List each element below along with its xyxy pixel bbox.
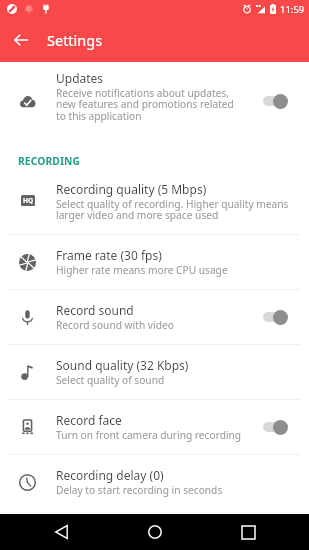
staticText: Settings [47, 30, 103, 50]
button[interactable]: Toggle Record face [262, 400, 309, 454]
staticText: Receive notifications about updates, new… [56, 86, 234, 123]
button[interactable]: Recents [231, 515, 265, 549]
staticText: Updates [56, 70, 104, 86]
staticText: Select quality of sound [56, 373, 165, 387]
button[interactable]: Home [138, 515, 172, 549]
button[interactable]: HQ [0, 172, 309, 234]
staticText: HQ [23, 196, 34, 205]
staticText: RECORDING [18, 154, 81, 168]
staticText: Select quality of recording. Higher qual… [56, 197, 289, 222]
button[interactable]: Updates [0, 62, 309, 130]
button[interactable]: Sound quality (32 Kbps) [0, 345, 309, 399]
button[interactable]: Record sound [0, 290, 309, 344]
staticText: Turn on front camera during recording [56, 428, 242, 442]
button[interactable]: Record face [0, 400, 309, 454]
staticText: Frame rate (30 fps) [56, 247, 162, 263]
button[interactable]: Back [6, 25, 36, 55]
staticText: Recording quality (5 Mbps) [56, 181, 207, 197]
button[interactable]: Toggle Record sound [262, 290, 309, 344]
button[interactable]: Frame rate (30 fps) [0, 235, 309, 289]
staticText: Recording delay (0) [56, 467, 164, 483]
staticText: 11:59 [280, 3, 305, 16]
staticText: Record face [56, 412, 122, 428]
staticText: Higher rate means more CPU usage [56, 263, 228, 277]
staticText: Sound quality (32 Kbps) [56, 357, 189, 373]
staticText: Record sound with video [56, 318, 174, 332]
button[interactable]: Recording delay (0) [0, 455, 309, 509]
button[interactable]: Toggle Updates [262, 67, 309, 135]
staticText: Record sound [56, 302, 134, 318]
button[interactable]: Back [44, 515, 78, 549]
staticText: Delay to start recording in seconds [56, 483, 223, 497]
